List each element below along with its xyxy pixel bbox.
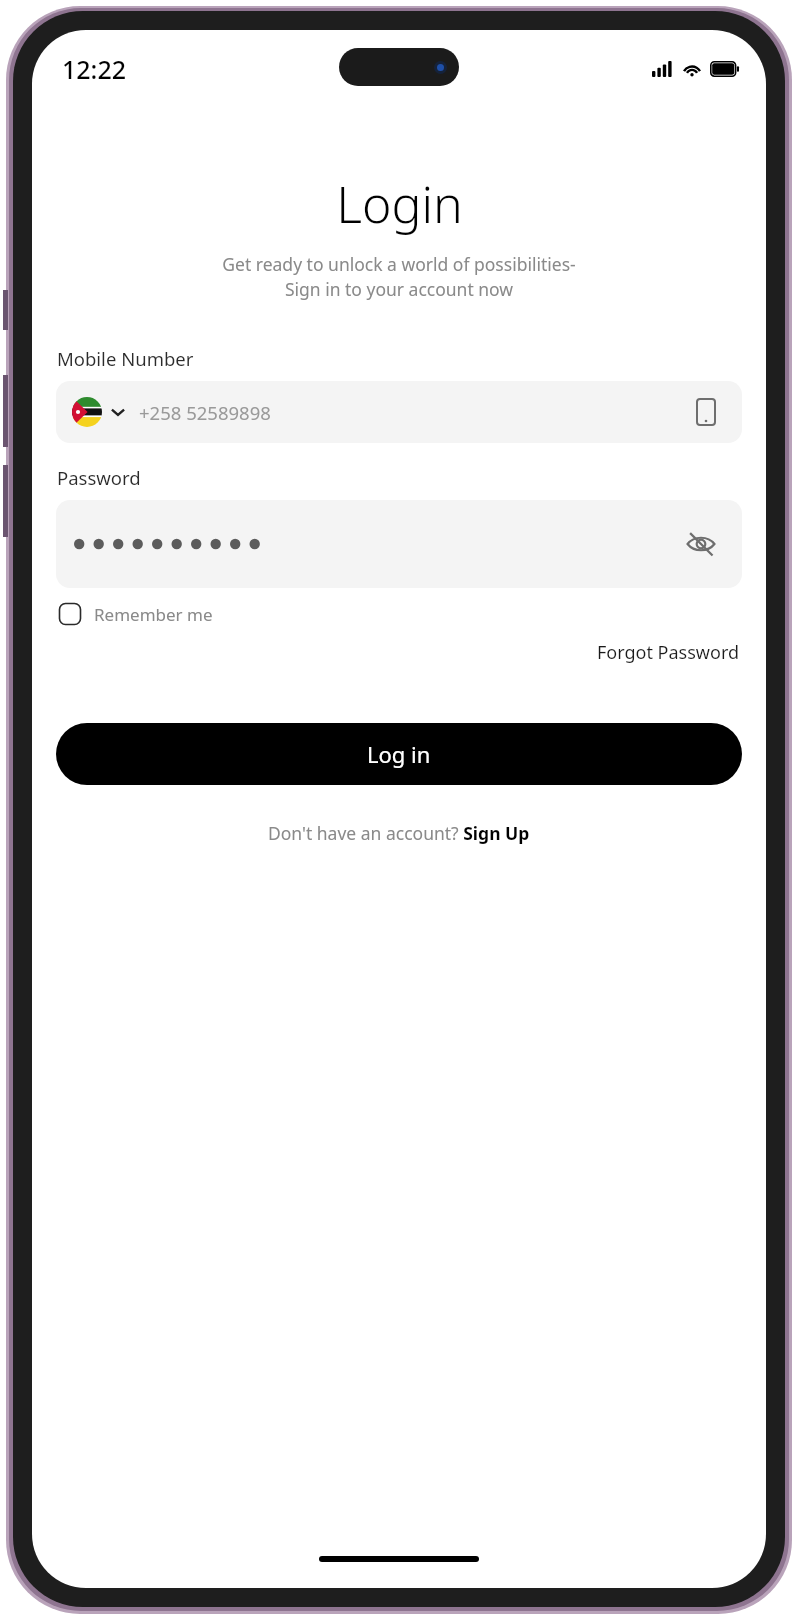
staticText: Forgot Password: [597, 640, 740, 665]
button[interactable]: Show password: [678, 521, 724, 567]
staticText: Remember me: [94, 603, 213, 626]
staticText: Mobile Number: [57, 346, 194, 371]
button[interactable]: Remember me: [56, 598, 215, 630]
staticText: Login: [336, 170, 463, 238]
button[interactable]: Forgot Password: [593, 636, 744, 669]
staticText: Don't have an account? Sign Up: [268, 821, 530, 845]
button[interactable]: Log in: [56, 723, 742, 785]
staticText: 12:22: [62, 52, 127, 86]
button[interactable]: Don't have an account? Sign Up: [262, 815, 536, 851]
button[interactable]: Mobile number: [686, 392, 726, 432]
staticText: +258 52589898: [139, 400, 271, 425]
staticText: Get ready to unlock a world of possibili…: [222, 252, 576, 302]
staticText: Log in: [367, 739, 431, 769]
button[interactable]: +258 52589898: [56, 381, 742, 443]
button[interactable]: Show password: [56, 500, 742, 588]
staticText: Password: [57, 465, 141, 490]
